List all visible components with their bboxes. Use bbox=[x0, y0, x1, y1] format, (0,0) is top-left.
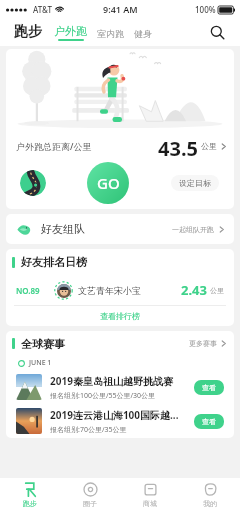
button[interactable]: 设定目标 bbox=[171, 175, 219, 191]
button[interactable]: 2019连云港山海100国际越... bbox=[6, 404, 234, 438]
staticText: 9:41 AM bbox=[103, 3, 138, 15]
staticText: 报名组别:70公里/35公里 bbox=[50, 425, 127, 435]
button[interactable]: 我的 bbox=[180, 478, 240, 512]
staticText: 我的 bbox=[203, 499, 217, 508]
staticText: 设定目标 bbox=[179, 178, 211, 188]
staticText: 查看 bbox=[202, 417, 216, 426]
button[interactable]: 查看排行榜 bbox=[6, 306, 234, 326]
button[interactable]: 2019秦皇岛祖山越野挑战赛 bbox=[6, 370, 234, 404]
staticText: 商城 bbox=[143, 499, 157, 508]
staticText: 公里 bbox=[210, 286, 224, 295]
button[interactable]: Search bbox=[206, 21, 228, 43]
staticText: 2019秦皇岛祖山越野挑战赛 bbox=[50, 374, 173, 388]
staticText: 跑步 bbox=[23, 499, 37, 508]
staticText: AT&T bbox=[33, 4, 52, 15]
button[interactable]: NO.89 bbox=[6, 275, 234, 305]
button[interactable]: Route map bbox=[20, 170, 46, 196]
staticText: 文艺青年宋小宝 bbox=[78, 285, 141, 296]
staticText: 查看排行榜 bbox=[100, 311, 140, 321]
staticText: 圈子 bbox=[83, 499, 97, 508]
staticText: 好友组队 bbox=[41, 222, 85, 236]
staticText: NO.89 bbox=[16, 285, 40, 296]
button[interactable]: 商城 bbox=[120, 478, 180, 512]
staticText: 100% bbox=[195, 4, 216, 15]
staticText: 户外跑 bbox=[54, 24, 87, 38]
staticText: 好友排名日榜 bbox=[21, 255, 87, 269]
staticText: 2.43 bbox=[181, 281, 207, 299]
button[interactable]: 好友组队 bbox=[6, 214, 234, 244]
staticText: 报名组别:100公里/55公里/30公里 bbox=[50, 391, 156, 401]
staticText: 全球赛事 bbox=[21, 337, 65, 351]
staticText: 2019连云港山海100国际越... bbox=[50, 408, 179, 422]
button[interactable]: 跑步 bbox=[14, 23, 42, 41]
staticText: GO bbox=[97, 173, 120, 193]
staticText: 公里 bbox=[201, 141, 217, 151]
button[interactable]: 圈子 bbox=[60, 478, 120, 512]
button[interactable]: 查看 bbox=[194, 380, 224, 395]
button[interactable]: 室内跑 bbox=[97, 28, 124, 39]
staticText: 43.5 bbox=[158, 135, 198, 157]
staticText: 查看 bbox=[202, 383, 216, 392]
button[interactable]: 健身 bbox=[134, 28, 152, 39]
staticText: JUNE 1 bbox=[29, 358, 52, 368]
staticText: 户外跑总距离/公里 bbox=[16, 140, 92, 152]
button[interactable]: 户外跑总距离/公里 bbox=[16, 135, 226, 157]
staticText: 一起组队开跑 bbox=[172, 225, 214, 234]
staticText: 更多赛事 bbox=[189, 339, 217, 348]
button[interactable]: 查看 bbox=[194, 414, 224, 429]
button[interactable]: GO bbox=[87, 162, 129, 204]
button[interactable]: 更多赛事 bbox=[189, 339, 226, 348]
button[interactable]: 跑步 bbox=[0, 478, 60, 512]
button[interactable]: 户外跑 bbox=[54, 24, 87, 41]
